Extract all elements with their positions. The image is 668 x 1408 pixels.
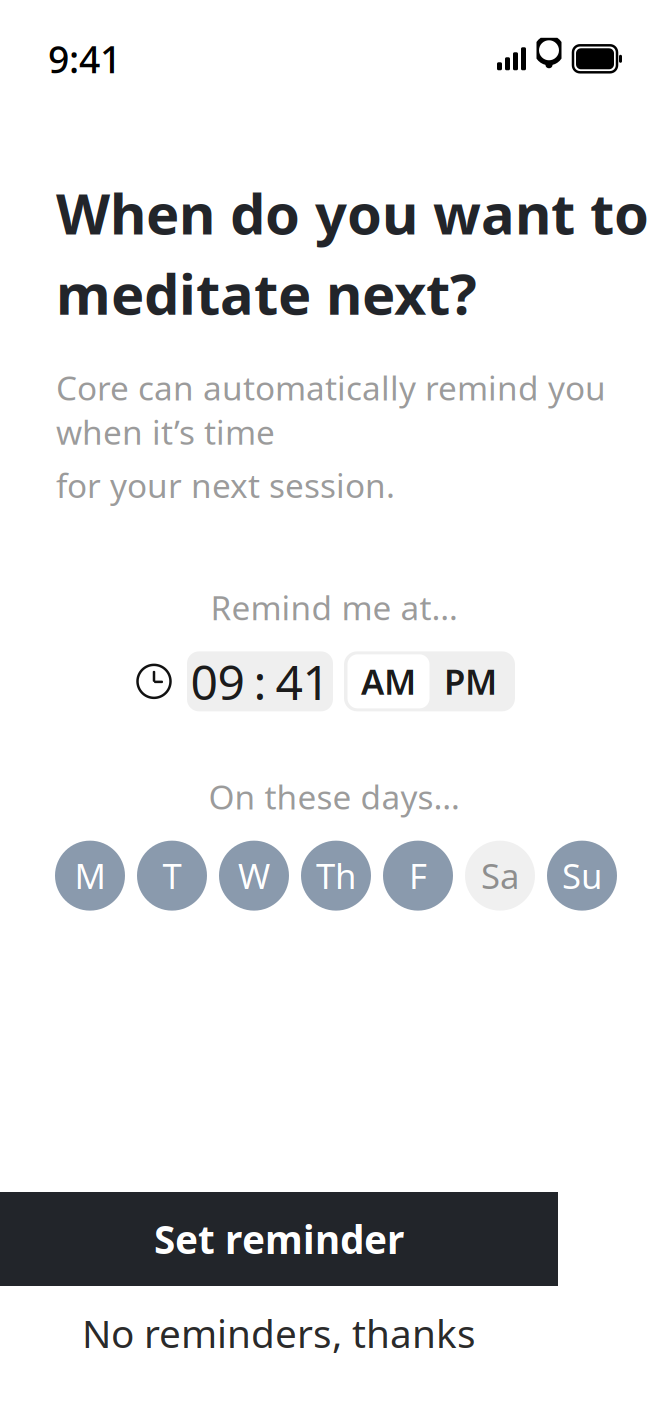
staticText: 41 <box>275 649 329 713</box>
staticText: W <box>238 853 270 899</box>
staticText: T <box>162 853 181 899</box>
staticText: Th <box>316 853 356 899</box>
button[interactable]: W <box>219 841 289 911</box>
button[interactable]: 09 <box>187 651 333 711</box>
staticText: No reminders, thanks <box>82 1307 476 1359</box>
button[interactable]: No reminders, thanks <box>0 1302 558 1364</box>
button[interactable]: T <box>137 841 207 911</box>
button[interactable]: AM <box>347 654 429 708</box>
staticText: F <box>409 853 427 899</box>
button[interactable]: Su <box>547 841 617 911</box>
staticText: AM <box>361 658 416 704</box>
button[interactable]: F <box>383 841 453 911</box>
button[interactable]: M <box>55 841 125 911</box>
staticText: Core can automatically remind you when i… <box>56 365 606 454</box>
staticText: M <box>74 853 105 899</box>
staticText: meditate next? <box>56 256 477 330</box>
staticText: Su <box>562 853 602 899</box>
button[interactable]: Sa <box>465 841 535 911</box>
staticText: Remind me at… <box>210 585 457 629</box>
staticText: PM <box>444 658 497 704</box>
button[interactable]: Set reminder <box>0 1192 558 1286</box>
staticText: Set reminder <box>154 1213 404 1265</box>
staticText: Sa <box>481 853 519 899</box>
staticText: When do you want to <box>56 176 649 250</box>
staticText: 09 <box>190 649 244 713</box>
staticText: On these days… <box>208 774 459 819</box>
staticText: : <box>253 649 266 713</box>
staticText: 9:41 <box>48 34 121 84</box>
button[interactable]: PM <box>429 654 511 708</box>
staticText: for your next session. <box>56 463 395 507</box>
button[interactable]: Th <box>301 841 371 911</box>
